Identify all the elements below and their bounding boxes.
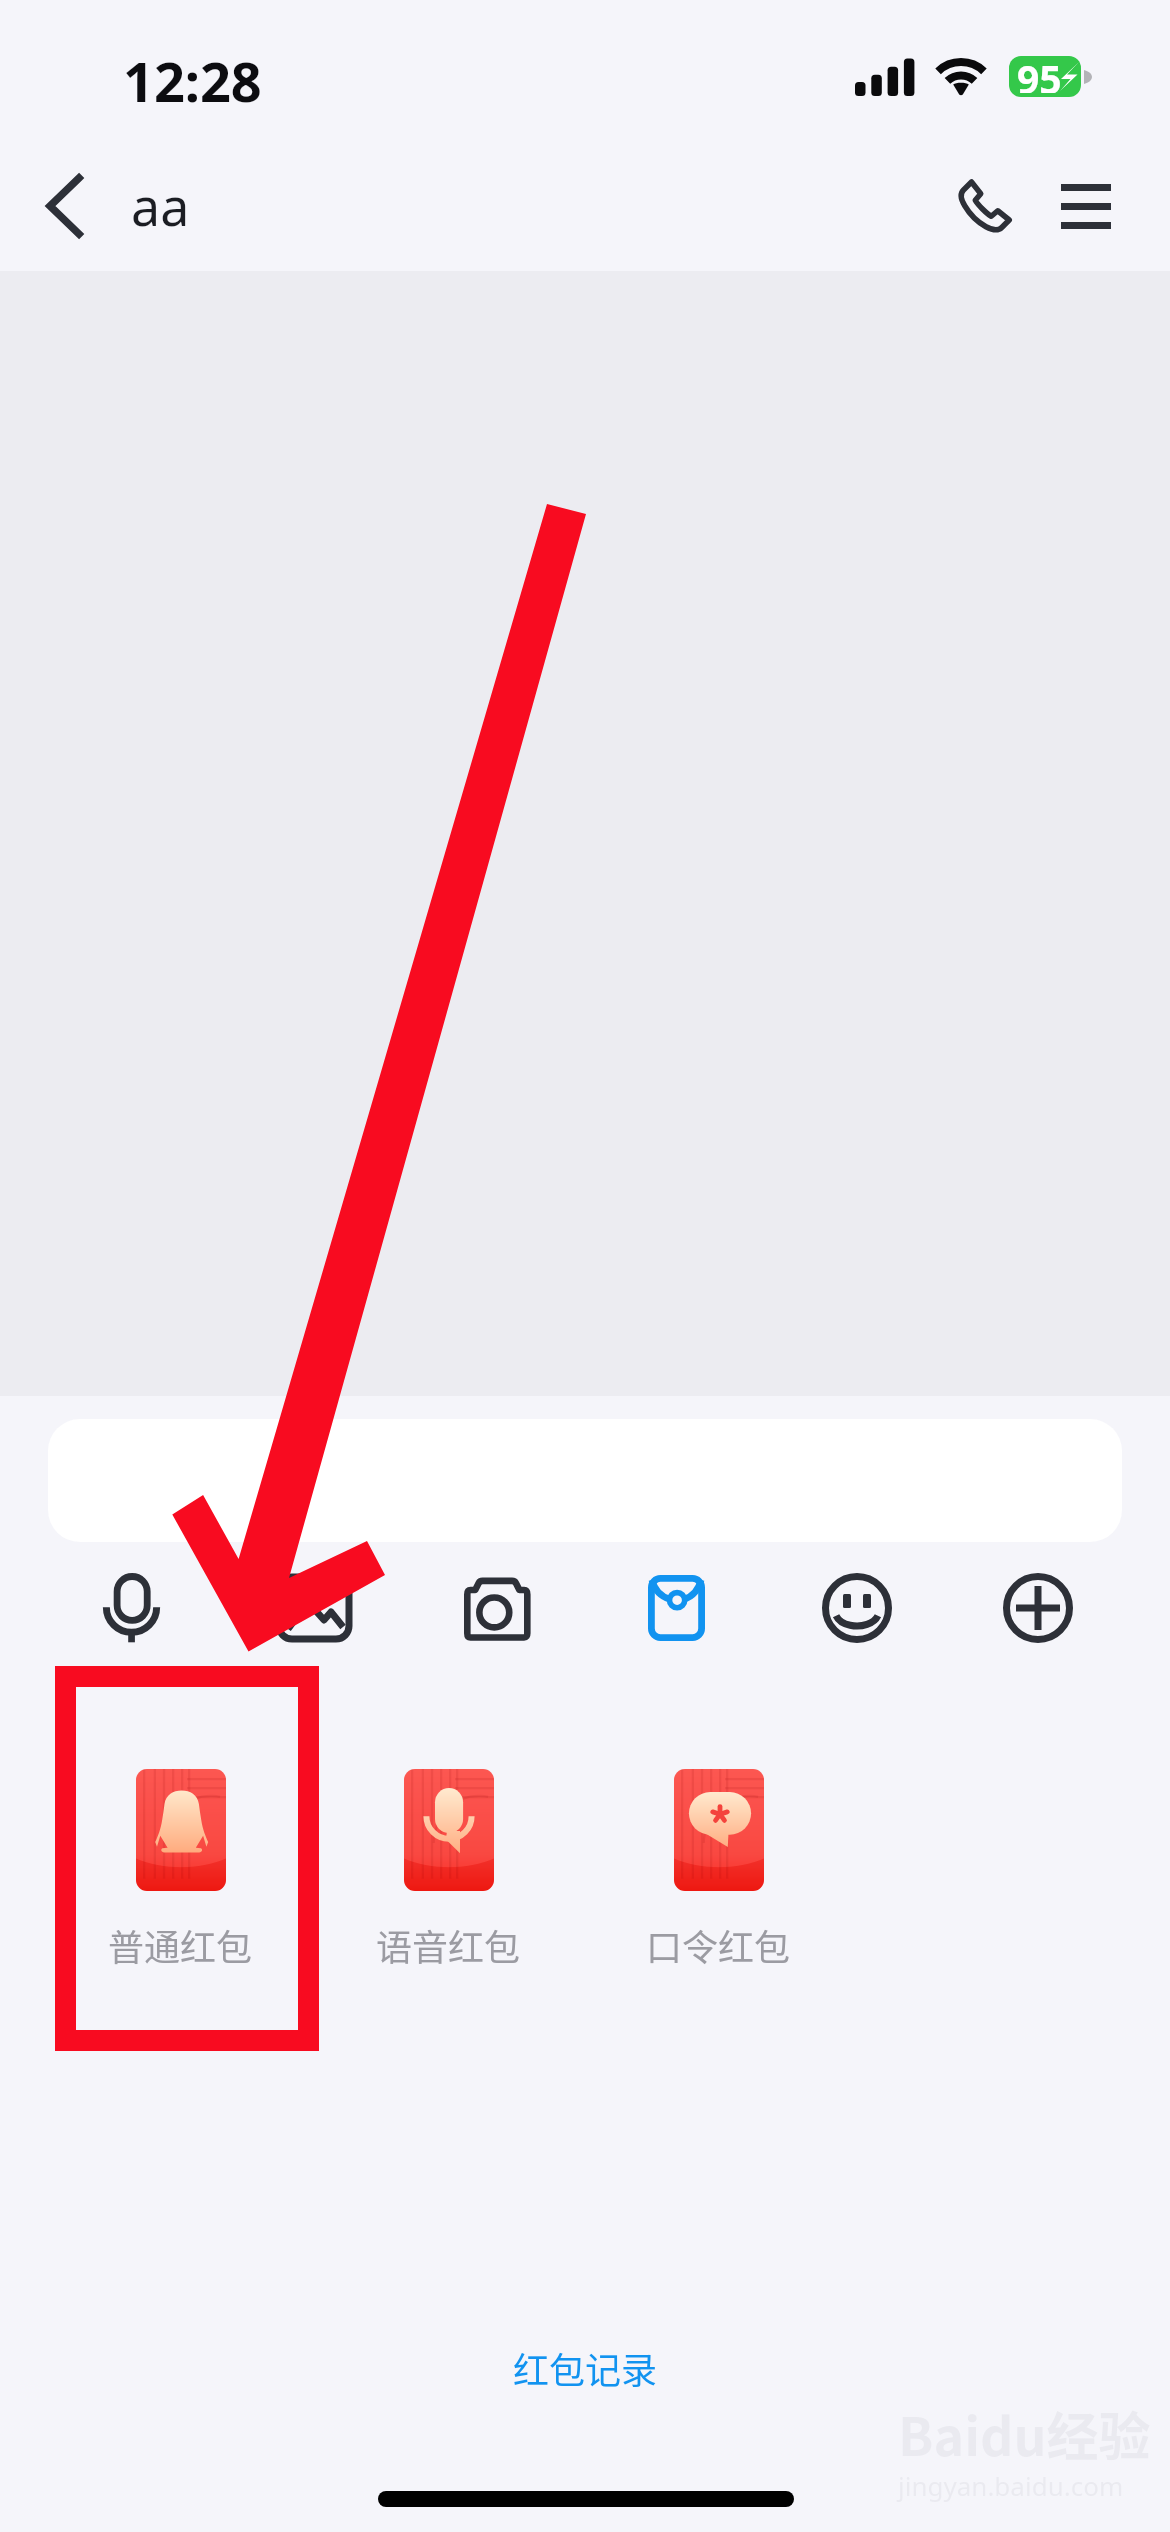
staticText: aa [131,170,190,241]
staticText: 语音红包 [376,1919,521,1970]
button[interactable]: Message input [48,1419,1122,1542]
staticText: 普通红包 [108,1919,253,1970]
staticText: 红包记录 [513,2342,658,2394]
button[interactable]: Emoji [802,1553,912,1663]
staticText: jingyan.baidu.com [898,2468,1124,2503]
staticText: 口令红包 [646,1919,791,1970]
button[interactable]: Voice [77,1553,187,1663]
button[interactable]: 口令红包 [623,1755,813,1970]
button[interactable]: Menu [1031,151,1141,261]
button[interactable]: Back [9,151,119,261]
staticText: Baidu经验 [898,2396,1151,2471]
button[interactable]: 红包记录 [385,2318,785,2418]
button[interactable]: 普通红包 [85,1755,275,1970]
staticText: 95 [1017,56,1062,93]
button[interactable]: Camera [440,1553,550,1663]
button[interactable]: Call [930,151,1040,261]
button[interactable]: Gallery [259,1553,369,1663]
button[interactable]: More [983,1553,1093,1663]
button[interactable]: Red packet [621,1553,731,1663]
button[interactable]: 语音红包 [353,1755,543,1970]
staticText: 12:28 [123,44,262,118]
